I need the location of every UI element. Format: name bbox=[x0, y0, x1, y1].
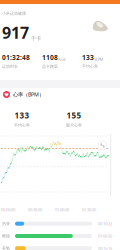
staticText: BPM bbox=[94, 56, 103, 62]
staticText: 00:00:00 bbox=[1, 207, 15, 212]
staticText: 平均心率 bbox=[82, 64, 98, 69]
staticText: 最大心率 bbox=[66, 123, 82, 127]
staticText: 小米运动健康 bbox=[2, 11, 26, 16]
staticText: 千卡 bbox=[31, 35, 41, 42]
staticText: 1108 bbox=[42, 53, 58, 62]
staticText: 133 bbox=[14, 110, 29, 121]
staticText: 平均心率 bbox=[14, 123, 30, 127]
staticText: 热身 bbox=[2, 221, 10, 226]
staticText: 00:30:00 bbox=[28, 207, 42, 212]
staticText: 01:32:48 bbox=[2, 53, 30, 62]
staticText: 01:00:00 bbox=[55, 207, 69, 212]
staticText: 燃脂 bbox=[2, 233, 10, 238]
staticText: 917 bbox=[2, 22, 29, 43]
staticText: 总卡路里 bbox=[42, 64, 58, 69]
staticText: 心率（BPM） bbox=[13, 91, 44, 98]
button[interactable]: Expand chart bbox=[98, 141, 107, 150]
staticText: 有氧 bbox=[2, 246, 10, 250]
staticText: 155 bbox=[66, 110, 81, 121]
staticText: 01:30:00 bbox=[82, 207, 96, 212]
staticText: 00:15:16 bbox=[98, 246, 112, 250]
staticText: 133 bbox=[82, 53, 94, 62]
staticText: kcal bbox=[58, 56, 65, 62]
staticText: 00:10:22 bbox=[98, 221, 112, 226]
staticText: 运动时长 bbox=[2, 64, 18, 69]
staticText: 01:06:50 bbox=[98, 233, 112, 239]
